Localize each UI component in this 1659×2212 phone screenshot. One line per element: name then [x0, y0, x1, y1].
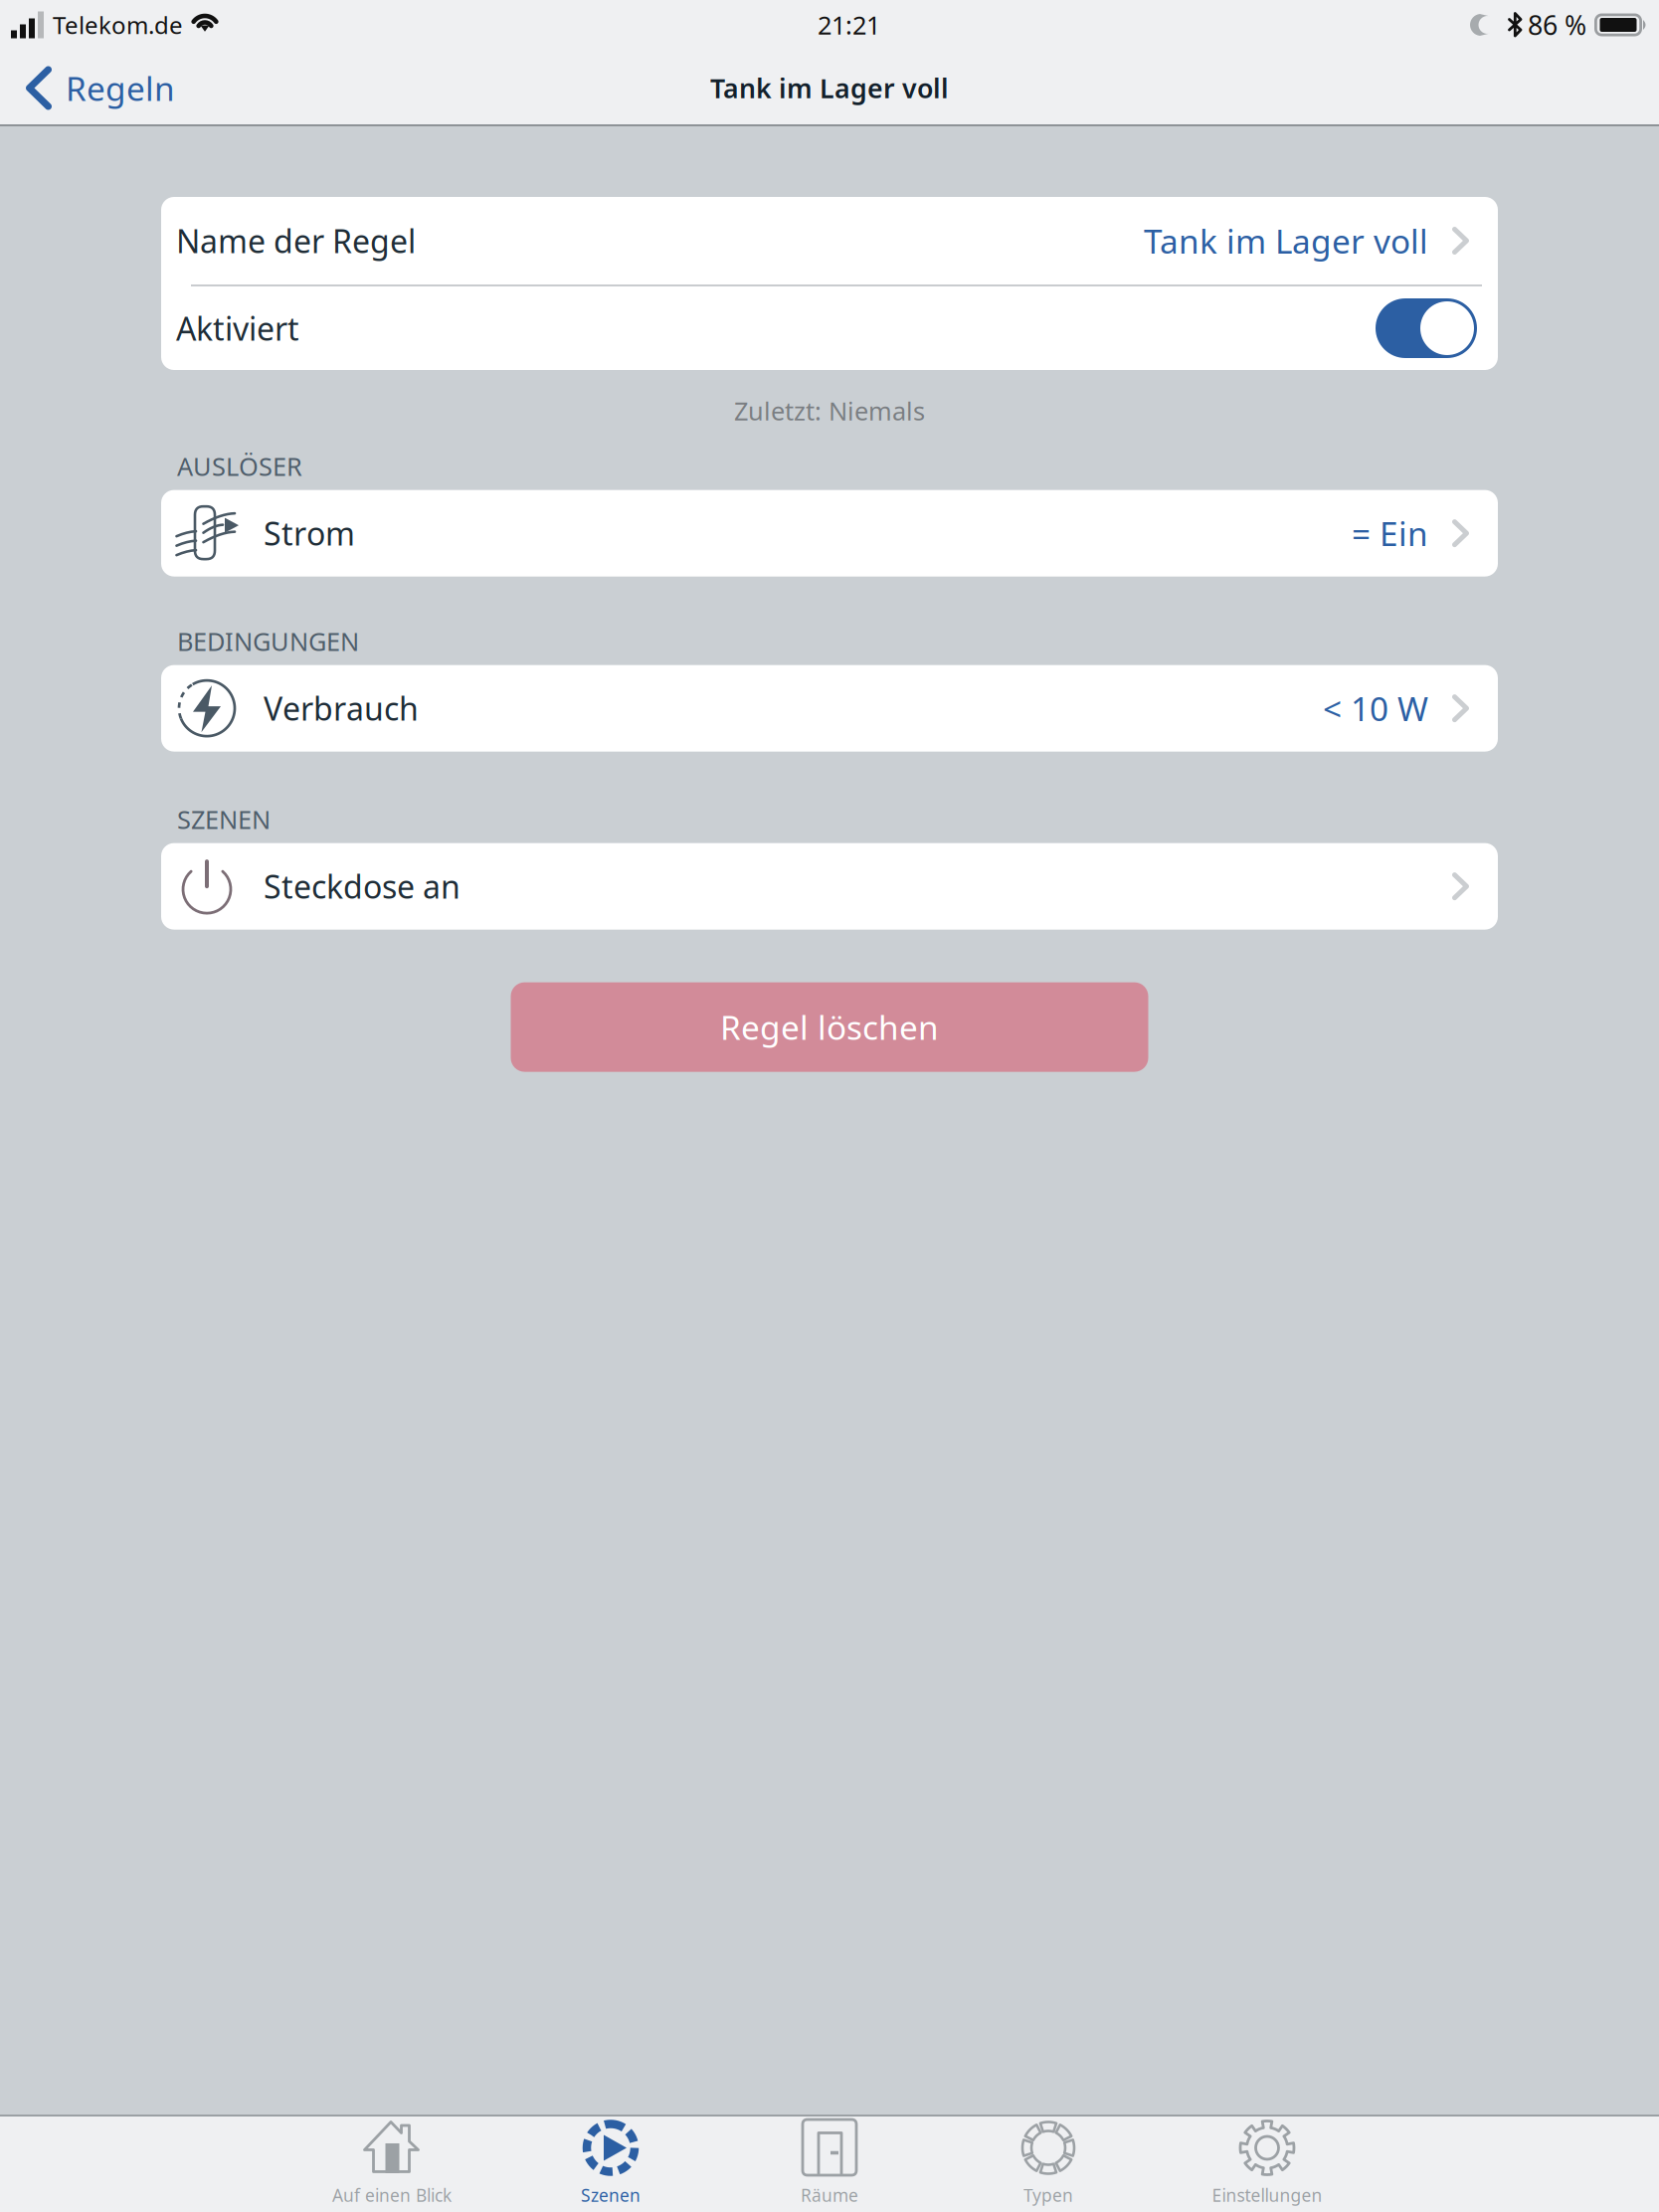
button[interactable]: Verbrauch: [161, 665, 1498, 752]
button[interactable]: Regeln: [0, 50, 201, 126]
staticText: Auf einen Blick: [332, 2184, 452, 2207]
staticText: BEDINGUNGEN: [177, 624, 359, 658]
button[interactable]: Einstellungen: [1158, 2117, 1377, 2212]
button[interactable]: Räume: [720, 2117, 939, 2212]
staticText: Szenen: [581, 2184, 641, 2207]
button[interactable]: Typen: [939, 2117, 1158, 2212]
staticText: Telekom.de: [53, 9, 183, 41]
staticText: < 10 W: [1323, 686, 1428, 730]
button[interactable]: Strom: [161, 490, 1498, 576]
staticText: Verbrauch: [264, 687, 419, 729]
staticText: Tank im Lager voll: [710, 70, 949, 106]
staticText: SZENEN: [177, 802, 271, 836]
staticText: Typen: [1023, 2184, 1073, 2207]
staticText: AUSLÖSER: [177, 449, 302, 483]
staticText: Räume: [801, 2184, 858, 2207]
staticText: Regel löschen: [720, 1005, 939, 1049]
staticText: Aktiviert: [176, 307, 299, 349]
button[interactable]: Name der Regel: [161, 197, 1498, 284]
staticText: Regeln: [66, 66, 175, 110]
button[interactable]: Auf einen Blick: [282, 2117, 501, 2212]
button[interactable]: Szenen: [501, 2117, 720, 2212]
staticText: Name der Regel: [176, 220, 416, 262]
staticText: Steckdose an: [264, 865, 461, 907]
staticText: Strom: [264, 512, 355, 554]
button[interactable]: Regel löschen: [511, 982, 1148, 1072]
staticText: 86 %: [1528, 7, 1586, 42]
staticText: Tank im Lager voll: [1144, 219, 1428, 263]
button[interactable]: Aktiviert: [161, 286, 1498, 370]
staticText: = Ein: [1352, 511, 1428, 555]
staticText: Einstellungen: [1212, 2184, 1322, 2207]
staticText: 21:21: [818, 8, 880, 42]
staticText: Zuletzt: Niemals: [734, 394, 925, 427]
button[interactable]: Steckdose an: [161, 843, 1498, 930]
